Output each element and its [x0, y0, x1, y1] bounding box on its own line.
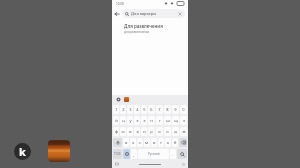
staticText: ?123: [114, 152, 121, 156]
button[interactable]: ы: [120, 127, 126, 136]
button[interactable]: и: [151, 138, 157, 147]
button[interactable]: ж: [180, 127, 187, 136]
staticText: ч: [132, 140, 135, 145]
button[interactable]: к: [134, 116, 140, 125]
button[interactable]: т: [158, 138, 164, 147]
button[interactable]: Keyboard settings: [115, 96, 122, 103]
staticText: с: [139, 140, 141, 145]
button[interactable]: ц: [120, 116, 126, 125]
staticText: 10:08: [116, 2, 124, 6]
button[interactable]: в: [127, 127, 133, 136]
staticText: г: [159, 118, 161, 123]
button[interactable]: Для развлечения: [112, 20, 188, 38]
button[interactable]: з: [180, 116, 187, 125]
button[interactable]: у: [127, 116, 133, 125]
button[interactable]: б: [172, 138, 178, 147]
staticText: k: [19, 144, 26, 159]
button[interactable]: е: [141, 116, 147, 125]
button[interactable]: ?123: [113, 149, 122, 159]
staticText: 7: [158, 107, 161, 112]
staticText: в: [129, 129, 132, 134]
button[interactable]: 6: [148, 105, 155, 114]
button[interactable]: 4: [134, 105, 140, 114]
button[interactable]: ь: [165, 138, 171, 147]
staticText: 2: [122, 107, 125, 112]
staticText: 1: [115, 107, 118, 112]
staticText: 4: [136, 107, 139, 112]
staticText: 9: [174, 107, 177, 112]
staticText: 3: [129, 107, 132, 112]
staticText: у: [129, 118, 132, 123]
button[interactable]: 5: [141, 105, 147, 114]
staticText: 6: [150, 107, 153, 112]
button[interactable]: л: [164, 127, 171, 136]
button[interactable]: я: [123, 138, 129, 147]
staticText: .: [172, 152, 174, 157]
button[interactable]: м: [144, 138, 150, 147]
button[interactable]: 2: [120, 105, 126, 114]
button[interactable]: Video thumbnail: [48, 140, 70, 162]
button[interactable]: Change language: [123, 149, 130, 159]
staticText: е: [143, 118, 146, 123]
button[interactable]: й: [113, 116, 119, 125]
staticText: о: [158, 129, 161, 134]
button[interactable]: о: [156, 127, 163, 136]
button[interactable]: а: [134, 127, 140, 136]
button[interactable]: Для карьеры: [122, 9, 185, 18]
staticText: ы: [121, 129, 125, 134]
button[interactable]: ш: [164, 116, 171, 125]
button[interactable]: 9: [172, 105, 179, 114]
button[interactable]: .: [170, 149, 176, 159]
staticText: 8: [166, 107, 169, 112]
staticText: д: [174, 129, 177, 134]
staticText: б: [174, 140, 177, 145]
button[interactable]: 7: [156, 105, 163, 114]
staticText: Для карьеры: [131, 11, 177, 16]
staticText: Для развлечения: [124, 23, 163, 29]
button[interactable]: 3: [127, 105, 133, 114]
staticText: я: [125, 140, 128, 145]
staticText: р: [150, 129, 153, 134]
staticText: ь: [167, 140, 170, 145]
button[interactable]: Backspace: [179, 138, 187, 147]
button[interactable]: 8: [164, 105, 171, 114]
staticText: л: [166, 129, 169, 134]
staticText: м: [145, 140, 149, 145]
staticText: з: [183, 118, 185, 123]
button[interactable]: г: [156, 116, 163, 125]
button[interactable]: Search: [177, 149, 187, 159]
staticText: щ: [174, 118, 178, 123]
staticText: ,: [133, 152, 135, 157]
staticText: Русский: [148, 152, 160, 156]
staticText: т: [160, 140, 162, 145]
button[interactable]: Clear query: [177, 11, 182, 16]
button[interactable]: Shift: [113, 138, 122, 147]
button[interactable]: ф: [113, 127, 119, 136]
button[interactable]: ,: [131, 149, 137, 159]
staticText: и: [153, 140, 156, 145]
button[interactable]: щ: [172, 116, 179, 125]
button[interactable]: ч: [130, 138, 136, 147]
staticText: ф: [115, 129, 118, 134]
staticText: ц: [122, 118, 125, 123]
button[interactable]: Back: [112, 7, 122, 20]
staticText: й: [115, 118, 118, 123]
staticText: ш: [166, 118, 170, 123]
button[interactable]: с: [137, 138, 143, 147]
button[interactable]: Stickers: [123, 96, 130, 103]
staticText: для развлечения: [124, 30, 150, 34]
button[interactable]: Channel avatar K: [14, 143, 31, 160]
button[interactable]: р: [148, 127, 155, 136]
staticText: п: [143, 129, 146, 134]
button[interactable]: Space: [138, 149, 169, 159]
button[interactable]: п: [141, 127, 147, 136]
staticText: ж: [182, 129, 186, 134]
button[interactable]: 1: [113, 105, 119, 114]
staticText: 0: [182, 107, 185, 112]
staticText: к: [136, 118, 139, 123]
button[interactable]: 0: [180, 105, 187, 114]
button[interactable]: д: [172, 127, 179, 136]
staticText: а: [136, 129, 139, 134]
button[interactable]: н: [148, 116, 155, 125]
staticText: 5: [143, 107, 146, 112]
